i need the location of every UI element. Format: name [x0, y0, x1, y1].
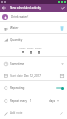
button[interactable]: Sometime — [0, 57, 67, 70]
button[interactable]: 100ml — [19, 45, 26, 53]
staticText: Dec 12, 2017 — [24, 74, 41, 78]
button[interactable]: Quantity — [0, 34, 67, 45]
button[interactable]: Water — [0, 22, 67, 34]
staticText: 1 — [30, 99, 32, 103]
staticText: Repeat every — [10, 99, 28, 103]
button[interactable]: Repeat every — [0, 94, 67, 107]
staticText: Start date — [10, 74, 23, 78]
staticText: Quantity — [10, 38, 23, 42]
staticText: Sometime — [10, 62, 25, 66]
button[interactable]: days — [49, 99, 59, 103]
staticText: 100ml — [19, 47, 26, 50]
button[interactable]: Save — [59, 4, 67, 12]
button[interactable]: Add note — [0, 107, 67, 119]
staticText: Repeating — [10, 86, 25, 90]
button[interactable]: Edit note — [59, 111, 64, 116]
button[interactable]: 500ml — [35, 45, 42, 54]
staticText: Water — [10, 26, 19, 30]
button[interactable]: Repeating — [0, 81, 67, 94]
staticText: Add note — [10, 111, 23, 115]
staticText: 250ml — [27, 47, 34, 50]
staticText: Drink water! — [11, 15, 29, 19]
button[interactable]: Back — [0, 4, 8, 12]
button[interactable]: Start date — [0, 70, 67, 81]
button[interactable]: Drink water! — [0, 12, 67, 22]
button[interactable]: Repeating toggle — [56, 86, 64, 90]
button[interactable]: 250ml — [27, 45, 34, 54]
staticText: days — [49, 99, 56, 103]
button[interactable]: Pick date — [59, 73, 65, 79]
staticText: 500ml — [35, 47, 42, 50]
staticText: New scheduled activity — [10, 6, 59, 10]
